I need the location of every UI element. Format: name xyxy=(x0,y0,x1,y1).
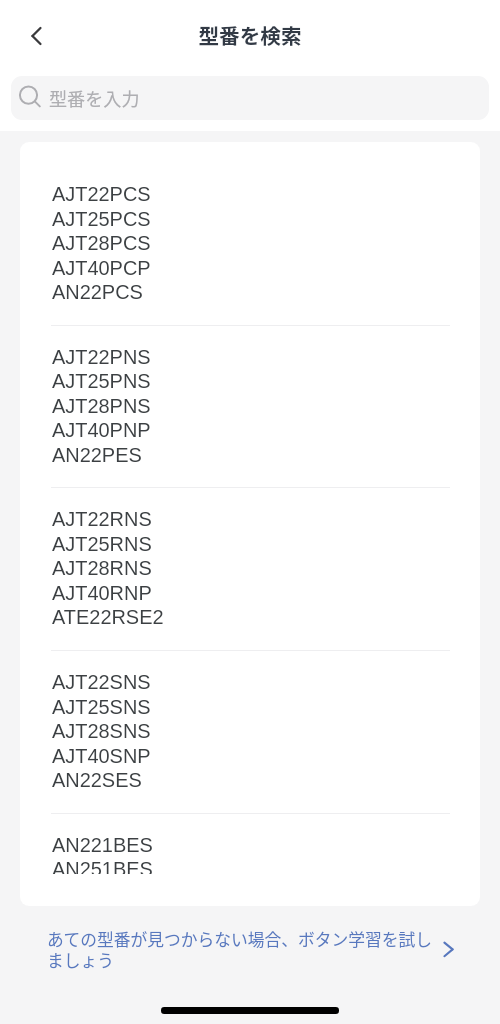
staticText: AJT28SNS xyxy=(52,720,151,742)
button[interactable]: AJT22PCS xyxy=(20,183,480,208)
button[interactable]: AJT40SNP xyxy=(20,745,480,770)
staticText: AJT40RNP xyxy=(52,582,152,604)
button[interactable]: AJT28SNS xyxy=(20,720,480,745)
button[interactable]: あての型番が見つからない場合、ボタン学習を試しましょう xyxy=(32,912,468,974)
button[interactable]: AJT28RNS xyxy=(20,557,480,582)
button[interactable]: AJT40PCP xyxy=(20,257,480,282)
staticText: あての型番が見つからない場合、ボタン学習を試しましょう xyxy=(47,927,437,972)
staticText: AJT40PCP xyxy=(52,257,151,279)
staticText: AN22PCS xyxy=(52,281,143,303)
button[interactable]: AJT40RNP xyxy=(20,582,480,607)
button[interactable]: AN221BES xyxy=(20,834,480,859)
staticText: AJT25PNS xyxy=(52,370,151,392)
button[interactable]: AJT22SNS xyxy=(20,671,480,696)
button[interactable]: AJT25PNS xyxy=(20,370,480,395)
staticText: AN22PES xyxy=(52,444,142,466)
button[interactable]: AJT40PNP xyxy=(20,419,480,444)
staticText: ATE22RSE2 xyxy=(52,606,164,628)
staticText: AJT25RNS xyxy=(52,533,152,555)
staticText: 型番を入力 xyxy=(49,85,140,111)
staticText: AN22SES xyxy=(52,769,142,791)
button[interactable]: Back xyxy=(16,18,52,54)
button[interactable]: AJT22PNS xyxy=(20,346,480,371)
button[interactable]: AN22SES xyxy=(20,769,480,794)
staticText: AJT40SNP xyxy=(52,745,151,767)
button[interactable]: AJT25SNS xyxy=(20,696,480,721)
button[interactable]: ATE22RSE2 xyxy=(20,606,480,631)
button[interactable]: AJT25PCS xyxy=(20,208,480,233)
staticText: 型番を検索 xyxy=(0,20,500,50)
button[interactable]: AJT28PNS xyxy=(20,395,480,420)
button[interactable]: AJT28PCS xyxy=(20,232,480,257)
staticText: AJT22RNS xyxy=(52,508,152,530)
button[interactable]: AN251BES xyxy=(20,858,480,874)
staticText: AJT28PNS xyxy=(52,395,151,417)
staticText: AJT25PCS xyxy=(52,208,151,230)
staticText: AJT22PNS xyxy=(52,346,151,368)
button[interactable]: AJT25RNS xyxy=(20,533,480,558)
staticText: AJT28PCS xyxy=(52,232,151,254)
button[interactable]: AN22PES xyxy=(20,444,480,469)
staticText: AJT40PNP xyxy=(52,419,151,441)
staticText: AJT25SNS xyxy=(52,696,151,718)
staticText: AJT22PCS xyxy=(52,183,151,205)
staticText: AN221BES xyxy=(52,834,153,856)
button[interactable]: AJT22RNS xyxy=(20,508,480,533)
button[interactable]: AN22PCS xyxy=(20,281,480,306)
staticText: AJT28RNS xyxy=(52,557,152,579)
staticText: AN251BES xyxy=(52,858,153,874)
staticText: AJT22SNS xyxy=(52,671,151,693)
button[interactable]: 型番を入力 xyxy=(11,76,489,120)
